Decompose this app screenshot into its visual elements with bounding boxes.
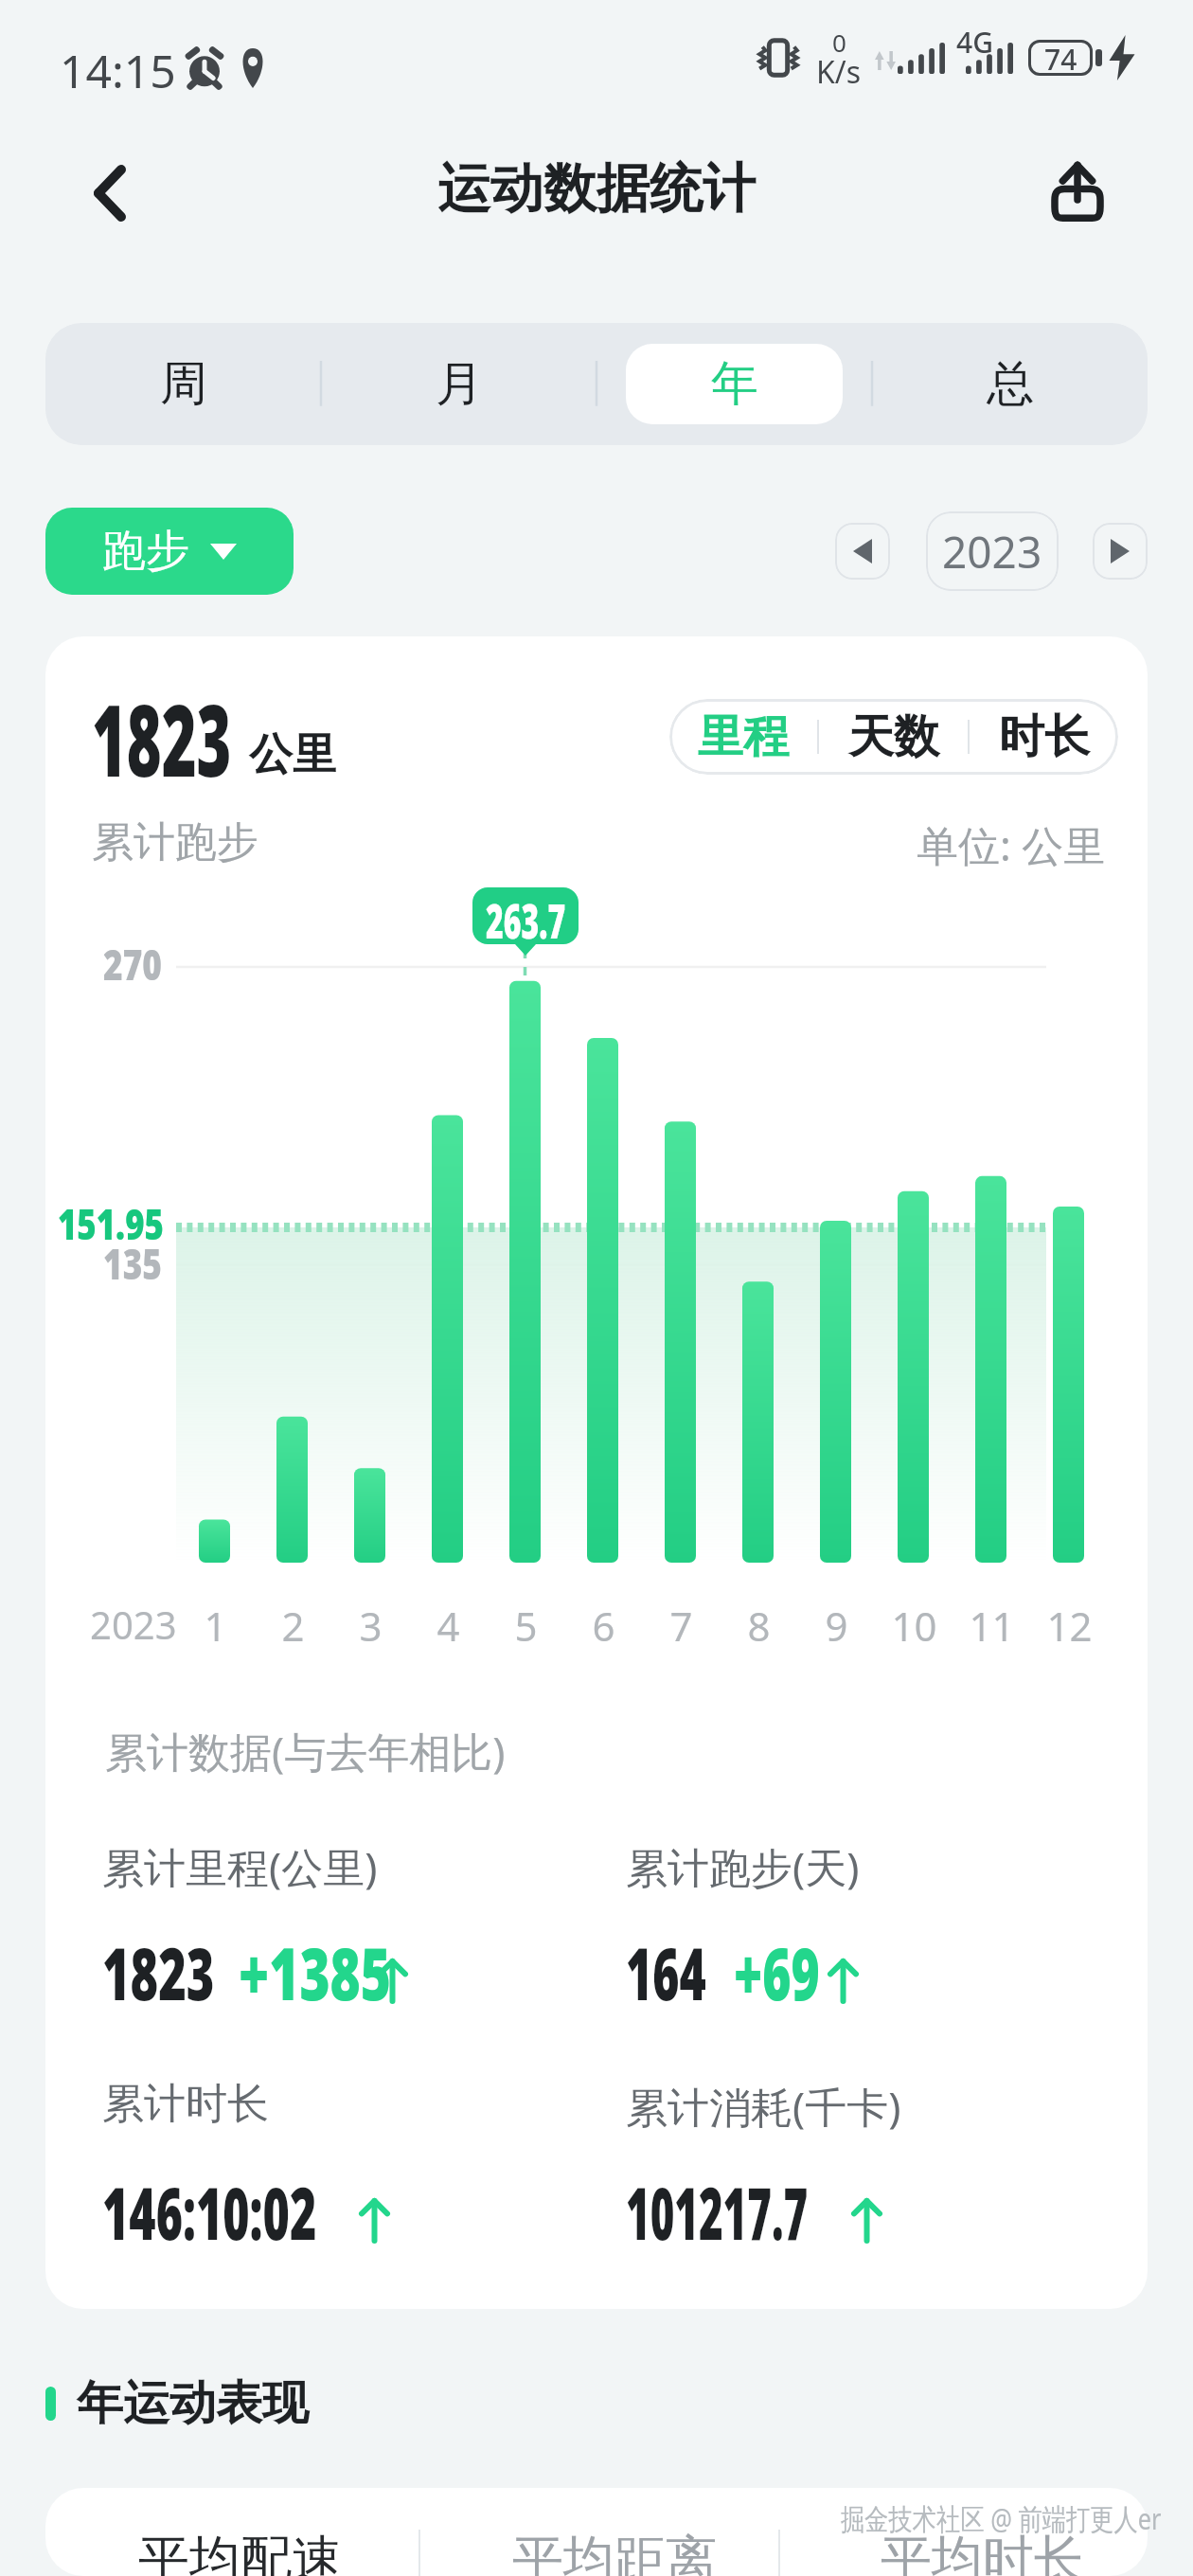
button[interactable]: 2023	[926, 511, 1059, 591]
staticText: 平均时长	[881, 2528, 1085, 2576]
staticText: 2023	[90, 1599, 177, 1650]
staticText: 累计数据(与去年相比)	[105, 1723, 506, 1780]
staticText: 2023	[942, 522, 1042, 581]
staticText: 累计里程(公里)	[102, 1838, 378, 1895]
staticText: 12	[1046, 1599, 1093, 1653]
staticText: 1823	[102, 1923, 215, 2022]
staticText: 164	[626, 1923, 706, 2022]
staticText: +69	[734, 1923, 820, 2022]
staticText: 累计跑步	[92, 816, 258, 868]
staticText: 1823	[92, 671, 232, 806]
staticText: 累计跑步(天)	[626, 1838, 860, 1895]
staticText: 270	[103, 936, 162, 993]
button[interactable]: 月	[350, 344, 567, 424]
button[interactable]: 总	[901, 344, 1118, 424]
staticText: 年	[711, 354, 758, 414]
button[interactable]: Previous year	[835, 523, 890, 580]
staticText: 公里	[249, 727, 336, 782]
staticText: 14:15	[60, 40, 176, 101]
staticText: 掘金技术社区 @ 前端打更人er	[841, 2498, 1162, 2538]
staticText: 146:10:02	[102, 2163, 317, 2262]
staticText: 11	[969, 1599, 1015, 1653]
staticText: 7	[669, 1599, 693, 1653]
staticText: 跑步	[102, 524, 189, 579]
button[interactable]: 天数	[819, 699, 968, 775]
button[interactable]: 平均时长	[881, 2528, 1085, 2576]
staticText: 9	[825, 1599, 848, 1653]
staticText: 天数	[848, 708, 939, 765]
staticText: 累计消耗(千卡)	[626, 2078, 901, 2135]
staticText: 8	[747, 1599, 771, 1653]
button[interactable]: Share	[1024, 138, 1131, 244]
button[interactable]: 里程	[669, 699, 817, 775]
staticText: 2	[281, 1599, 305, 1653]
button[interactable]: 跑步	[45, 508, 294, 595]
staticText: 6	[592, 1599, 615, 1653]
staticText: K/s	[816, 51, 862, 93]
staticText: 5	[514, 1599, 538, 1653]
staticText: 10	[891, 1599, 937, 1653]
staticText: 月	[436, 354, 483, 414]
staticText: 里程	[698, 708, 789, 765]
staticText: 0	[832, 26, 846, 59]
staticText: 4	[436, 1599, 460, 1653]
staticText: 74	[1044, 40, 1077, 76]
staticText: 263.7	[486, 888, 566, 953]
button[interactable]: Next year	[1093, 523, 1148, 580]
staticText: +1385	[239, 1923, 391, 2022]
button[interactable]: 周	[75, 344, 292, 424]
staticText: 151.95	[58, 1195, 164, 1252]
button[interactable]: 时长	[970, 699, 1118, 775]
staticText: 平均配速	[138, 2528, 343, 2576]
staticText: 101217.7	[626, 2163, 808, 2262]
staticText: 平均距离	[512, 2528, 717, 2576]
staticText: 累计时长	[102, 2078, 269, 2130]
button[interactable]: Back	[57, 140, 163, 246]
staticText: 周	[160, 354, 207, 414]
staticText: 3	[359, 1599, 383, 1653]
staticText: 4G	[956, 23, 993, 62]
button[interactable]: 年	[626, 344, 843, 424]
staticText: 年运动表现	[77, 2374, 309, 2433]
staticText: 1	[204, 1599, 227, 1653]
staticText: 运动数据统计	[437, 155, 756, 223]
button[interactable]: 平均距离	[512, 2528, 717, 2576]
staticText: 时长	[999, 708, 1090, 765]
button[interactable]: 平均配速	[138, 2528, 343, 2576]
staticText: 总	[987, 354, 1034, 414]
staticText: 135	[103, 1235, 162, 1292]
staticText: 单位: 公里	[917, 816, 1106, 873]
